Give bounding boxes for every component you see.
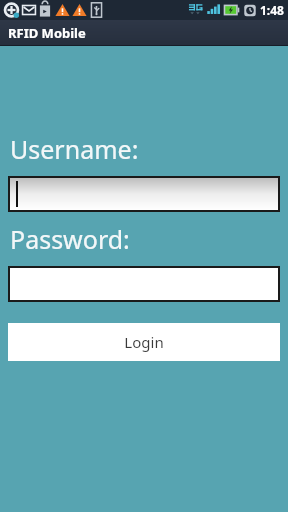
- staticText: RFID Mobile: [8, 24, 86, 42]
- staticText: Username:: [10, 132, 139, 166]
- staticText: Password:: [10, 222, 130, 256]
- button[interactable]: Login: [8, 323, 280, 361]
- staticText: 1:48: [260, 2, 284, 18]
- staticText: Login: [124, 332, 164, 352]
- button[interactable]: [10, 178, 278, 210]
